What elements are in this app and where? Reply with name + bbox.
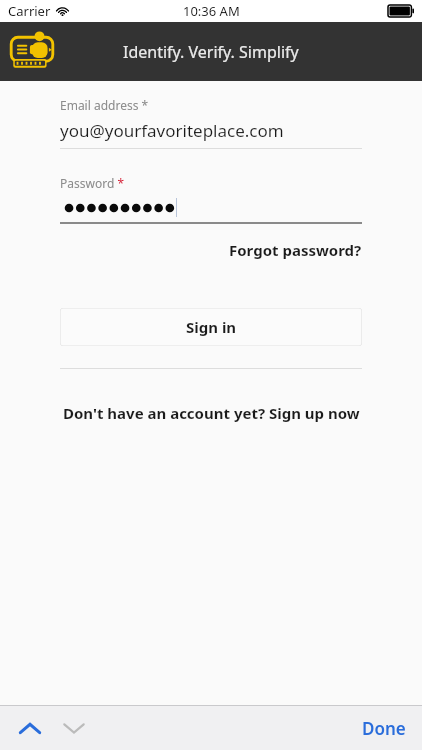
button[interactable]: We Scan logo [6, 29, 58, 75]
button[interactable]: Next field [54, 708, 94, 748]
staticText: Identify. Verify. Simplify [123, 41, 299, 63]
button[interactable]: Email address * [60, 97, 362, 149]
button[interactable]: Previous field [10, 708, 50, 748]
button[interactable]: Password * [60, 175, 362, 224]
staticText: Carrier [8, 2, 51, 20]
button[interactable]: Don't have an account yet? Sign up now [51, 399, 372, 427]
staticText: you@yourfavoriteplace.com [60, 119, 284, 142]
staticText: Forgot password? [229, 240, 362, 260]
staticText: Don't have an account yet? Sign up now [63, 403, 360, 423]
staticText: Email address * [60, 97, 149, 113]
button[interactable]: Forgot password? [229, 236, 362, 264]
button[interactable]: Sign in [60, 308, 362, 346]
staticText: 10:36 AM [183, 2, 240, 20]
staticText: Sign in [186, 317, 237, 337]
staticText: Done [362, 717, 406, 740]
staticText: Password * [60, 175, 125, 191]
button[interactable]: Done [346, 709, 422, 748]
